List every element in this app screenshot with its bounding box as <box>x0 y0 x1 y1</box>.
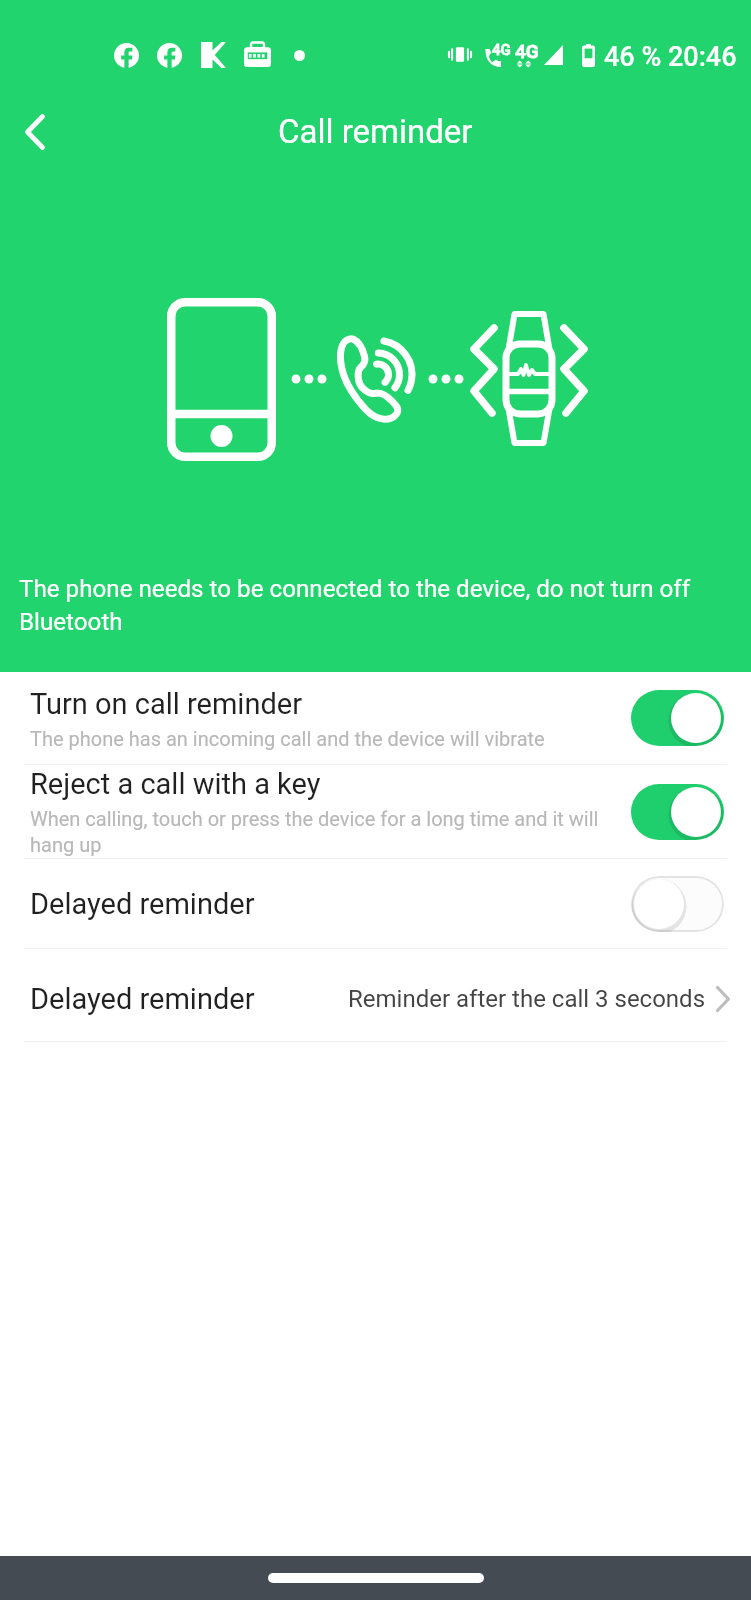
button[interactable]: Reject a call with a key <box>0 765 751 858</box>
staticText: 20:46 <box>668 41 737 73</box>
button[interactable]: Turn on call reminder <box>0 672 751 764</box>
button[interactable]: Back <box>0 92 73 172</box>
button[interactable]: Delayed reminder <box>0 859 751 948</box>
staticText: Call reminder <box>278 112 473 151</box>
staticText: The phone has an incoming call and the d… <box>30 727 625 750</box>
staticText: 4G <box>515 40 539 62</box>
button[interactable]: Home <box>268 1573 484 1583</box>
button[interactable]: Switch on <box>631 690 724 746</box>
staticText: Delayed reminder <box>30 887 255 921</box>
staticText: 4G <box>492 41 511 59</box>
staticText: Delayed reminder <box>30 982 255 1016</box>
button[interactable]: Switch off <box>631 876 724 932</box>
staticText: Turn on call reminder <box>30 687 302 721</box>
staticText: When calling, touch or press the device … <box>30 807 610 856</box>
button[interactable]: Delayed reminder <box>0 957 751 1041</box>
button[interactable]: Switch on <box>631 784 724 840</box>
staticText: The phone needs to be connected to the d… <box>19 575 719 636</box>
staticText: 46 % <box>604 41 662 73</box>
staticText: Reject a call with a key <box>30 767 321 801</box>
staticText: Reminder after the call 3 seconds <box>348 985 706 1013</box>
